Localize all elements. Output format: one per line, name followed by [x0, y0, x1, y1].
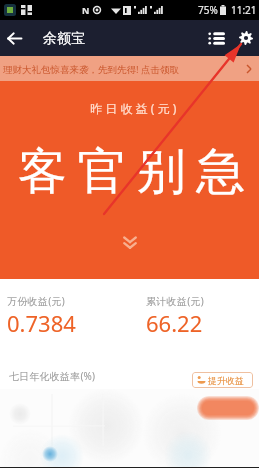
staticText: 累计收益(元) — [146, 294, 205, 308]
button[interactable]: Transaction list — [200, 20, 232, 56]
staticText: 七日年化收益率(%) — [9, 369, 96, 383]
staticText: 万份收益(元) — [7, 294, 66, 308]
button[interactable]: 理财大礼包惊喜来袭，先到先得! 点击领取 — [0, 56, 259, 81]
staticText: 理财大礼包惊喜来袭，先到先得! 点击领取 — [3, 63, 180, 76]
button[interactable]: 提升收益 — [192, 372, 253, 388]
button[interactable]: Back — [0, 20, 29, 56]
staticText: 余额宝 — [43, 30, 85, 48]
staticText: 客官别急 — [18, 141, 256, 203]
staticText: N — [82, 4, 90, 16]
staticText: 0.7384 — [7, 308, 76, 338]
staticText: 66.22 — [146, 308, 203, 338]
staticText: 75% — [198, 3, 218, 17]
button[interactable]: Settings — [232, 20, 259, 56]
staticText: 昨日收益(元) — [90, 100, 180, 116]
staticText: 11:21 — [231, 3, 257, 17]
staticText: 提升收益 — [208, 375, 244, 386]
